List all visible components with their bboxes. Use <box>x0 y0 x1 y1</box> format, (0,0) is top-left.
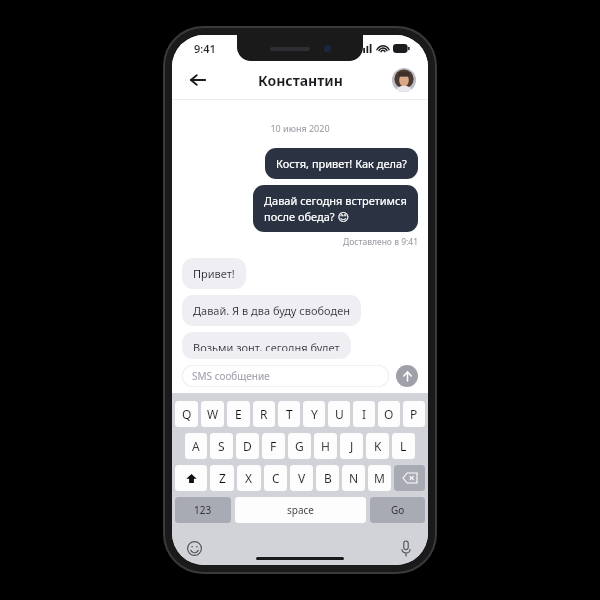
button[interactable]: Dictation <box>396 538 416 558</box>
staticText: G <box>295 438 304 454</box>
staticText: Доставлено в 9:41 <box>182 236 418 248</box>
staticText: 123 <box>194 503 212 517</box>
staticText: Go <box>391 503 405 517</box>
button[interactable]: W <box>201 401 224 427</box>
staticText: I <box>362 406 367 422</box>
button[interactable]: S <box>210 433 233 459</box>
staticText: A <box>192 438 200 454</box>
staticText: Y <box>311 406 318 422</box>
button[interactable]: Давай сегодня встретимся после обеда? 😊 <box>253 185 418 232</box>
staticText: Возьми зонт, сегодня будет дождь 🌂 <box>193 340 340 351</box>
staticText: J <box>350 438 354 454</box>
button[interactable]: C <box>264 465 287 491</box>
button[interactable]: B <box>316 465 339 491</box>
button[interactable]: Давай. Я в два буду свободен <box>182 295 361 326</box>
staticText: 9:41 <box>194 41 216 56</box>
button[interactable]: E <box>227 401 250 427</box>
button[interactable]: Shift <box>175 465 207 491</box>
button[interactable]: Костя, привет! Как дела? <box>265 148 418 179</box>
staticText: Константин <box>258 71 343 90</box>
staticText: SMS сообщение <box>192 369 270 383</box>
staticText: D <box>243 438 252 454</box>
staticText: V <box>298 470 306 486</box>
button[interactable]: P <box>403 401 425 427</box>
staticText: L <box>400 438 407 454</box>
staticText: 10 июня 2020 <box>182 122 418 134</box>
button[interactable]: R <box>253 401 275 427</box>
staticText: Давай. Я в два буду свободен <box>193 303 350 318</box>
staticText: M <box>374 470 385 486</box>
button[interactable]: A <box>185 433 207 459</box>
button[interactable]: T <box>278 401 300 427</box>
button[interactable]: Back <box>180 62 216 98</box>
button[interactable]: J <box>340 433 363 459</box>
button[interactable]: G <box>288 433 311 459</box>
button[interactable]: Возьми зонт, сегодня будет дождь 🌂 <box>182 332 351 359</box>
staticText: Q <box>182 406 192 422</box>
button[interactable]: D <box>236 433 259 459</box>
button[interactable]: Q <box>175 401 198 427</box>
staticText: P <box>410 406 418 422</box>
staticText: E <box>235 406 242 422</box>
button[interactable]: Emoji <box>184 538 204 558</box>
button[interactable]: Y <box>303 401 325 427</box>
staticText: Z <box>219 470 226 486</box>
button[interactable]: V <box>290 465 313 491</box>
button[interactable]: Backspace <box>394 465 425 491</box>
staticText: N <box>349 470 359 486</box>
button[interactable]: N <box>342 465 365 491</box>
staticText: B <box>324 470 332 486</box>
staticText: space <box>287 503 314 517</box>
staticText: W <box>207 406 219 422</box>
button[interactable]: SMS сообщение <box>182 365 389 387</box>
staticText: U <box>335 406 344 422</box>
button[interactable]: K <box>366 433 389 459</box>
staticText: H <box>321 438 330 454</box>
staticText: Костя, привет! Как дела? <box>276 156 407 171</box>
button[interactable]: Привет! <box>182 258 246 289</box>
staticText: R <box>260 406 268 422</box>
button[interactable]: Z <box>210 465 234 491</box>
staticText: C <box>272 470 280 486</box>
staticText: O <box>384 406 394 422</box>
staticText: Давай сегодня встретимся после обеда? 😊 <box>264 193 407 224</box>
staticText: T <box>286 406 293 422</box>
button[interactable]: L <box>392 433 415 459</box>
button[interactable]: F <box>262 433 285 459</box>
button[interactable]: Profile <box>392 68 416 92</box>
staticText: S <box>218 438 225 454</box>
button[interactable]: space <box>235 497 366 523</box>
button[interactable]: I <box>353 401 375 427</box>
button[interactable]: M <box>368 465 391 491</box>
button[interactable]: O <box>378 401 400 427</box>
button[interactable]: H <box>314 433 337 459</box>
button[interactable]: X <box>237 465 261 491</box>
staticText: F <box>270 438 277 454</box>
staticText: Привет! <box>193 266 235 281</box>
button[interactable]: Go <box>370 497 425 523</box>
button[interactable]: Send <box>396 365 418 387</box>
staticText: K <box>374 438 382 454</box>
button[interactable]: U <box>328 401 350 427</box>
staticText: X <box>245 470 253 486</box>
button[interactable]: 123 <box>175 497 231 523</box>
